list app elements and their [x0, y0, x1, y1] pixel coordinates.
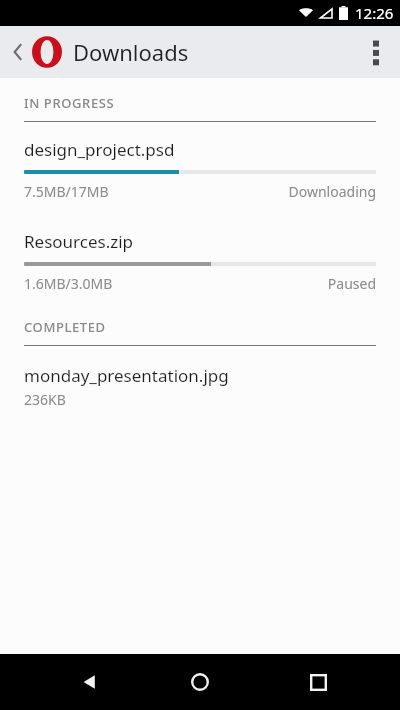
- button[interactable]: Recent apps: [294, 658, 342, 706]
- staticText: 7.5MB/17MB: [24, 182, 109, 201]
- button[interactable]: Back: [66, 658, 114, 706]
- button[interactable]: Back: [8, 35, 28, 69]
- button[interactable]: design_project.psd: [0, 122, 400, 214]
- button[interactable]: monday_presentation.jpg: [0, 346, 400, 423]
- staticText: design_project.psd: [24, 138, 175, 161]
- button[interactable]: Resources.zip: [0, 214, 400, 306]
- staticText: IN PROGRESS: [24, 94, 115, 112]
- staticText: 1.6MB/3.0MB: [24, 274, 113, 293]
- staticText: Paused: [327, 274, 376, 293]
- staticText: monday_presentation.jpg: [24, 364, 229, 387]
- button[interactable]: More options: [352, 26, 400, 78]
- staticText: Downloads: [73, 37, 189, 67]
- staticText: 236KB: [24, 390, 66, 409]
- staticText: COMPLETED: [24, 318, 106, 336]
- staticText: Downloading: [288, 182, 376, 201]
- staticText: Resources.zip: [24, 230, 134, 253]
- button[interactable]: Home: [176, 658, 224, 706]
- staticText: 12:26: [355, 3, 394, 23]
